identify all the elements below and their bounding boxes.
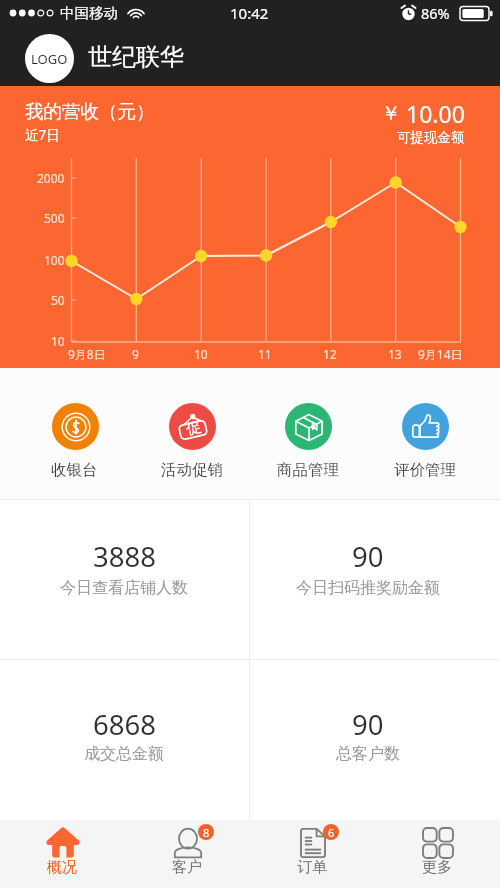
staticText: 90	[352, 538, 384, 575]
button[interactable]: 商品管理	[267, 368, 349, 499]
staticText: 50	[51, 292, 65, 308]
staticText: 86%	[421, 3, 450, 23]
staticText: 12	[323, 346, 337, 362]
staticText: 客户	[172, 858, 202, 877]
staticText: 世纪联华	[88, 42, 184, 72]
button[interactable]: Logo	[25, 34, 74, 83]
staticText: 3888	[93, 538, 156, 575]
staticText: 10:42	[230, 3, 269, 23]
staticText: 10.00	[406, 98, 465, 129]
staticText: 可提现金额	[397, 129, 465, 146]
staticText: 商品管理	[277, 460, 339, 480]
staticText: 9月8日	[68, 346, 106, 362]
staticText: 总客户数	[336, 744, 400, 764]
staticText: 10	[194, 346, 208, 362]
staticText: 今日扫码推奖励金额	[296, 578, 440, 598]
button[interactable]: 90	[250, 660, 500, 820]
staticText: 近7日	[25, 126, 60, 144]
staticText: 9	[132, 346, 139, 362]
staticText: 收银台	[51, 460, 98, 480]
staticText: 概况	[47, 858, 77, 877]
staticText: 2000	[37, 170, 65, 186]
staticText: 11	[258, 346, 272, 362]
button[interactable]: 6	[250, 820, 375, 888]
staticText: 500	[44, 210, 65, 226]
staticText: 100	[44, 252, 65, 268]
button[interactable]: 评价管理	[384, 368, 466, 499]
staticText: 更多	[422, 858, 452, 877]
staticText: 我的营收（元）	[25, 100, 155, 123]
staticText: 促	[184, 417, 203, 439]
staticText: 成交总金额	[84, 744, 164, 764]
staticText: 8	[203, 825, 210, 840]
staticText: 评价管理	[394, 460, 456, 480]
staticText: 6868	[93, 706, 156, 743]
button[interactable]: 收银台	[34, 368, 116, 499]
staticText: 13	[388, 346, 402, 362]
staticText: 活动促销	[161, 460, 223, 480]
staticText: 订单	[297, 858, 327, 877]
staticText: 9月14日	[418, 346, 463, 362]
button[interactable]: 促	[151, 368, 233, 499]
staticText: 6	[328, 825, 335, 840]
button[interactable]: 概况	[0, 820, 125, 888]
staticText: LOGO	[31, 50, 68, 68]
button[interactable]: 6868	[0, 660, 249, 820]
button[interactable]: 3888	[0, 500, 249, 659]
staticText: 中国移动	[60, 4, 118, 22]
staticText: 90	[352, 706, 384, 743]
staticText: 今日查看店铺人数	[60, 578, 188, 598]
staticText: ￥	[381, 101, 401, 126]
button[interactable]: 90	[250, 500, 500, 659]
button[interactable]: 更多	[375, 820, 500, 888]
button[interactable]: 8	[125, 820, 250, 888]
staticText: 10	[51, 333, 65, 349]
